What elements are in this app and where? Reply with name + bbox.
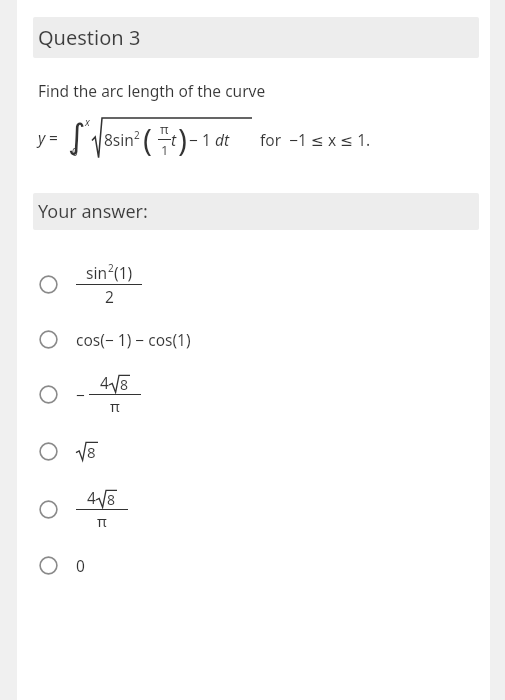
button[interactable]: Option cosine minus one minus cosine one	[0, 324, 505, 354]
staticText: 0	[72, 145, 78, 159]
staticText: 8	[107, 490, 116, 509]
staticText: 2	[134, 128, 140, 142]
staticText: =	[49, 127, 58, 148]
button[interactable]: Option sin squared 1 over 2	[0, 253, 505, 315]
staticText: − 1	[189, 129, 211, 150]
staticText: ∫	[68, 116, 86, 156]
staticText: x	[85, 115, 90, 129]
staticText: t	[171, 129, 177, 150]
staticText: 8	[120, 375, 129, 394]
staticText: ⎛	[140, 131, 148, 148]
staticText: for −1 ≤ x ≤ 1.	[260, 129, 371, 150]
button[interactable]: Option zero	[0, 550, 505, 580]
staticText: )	[178, 119, 187, 160]
staticText: 4	[87, 487, 96, 508]
staticText: Question 3	[38, 24, 141, 51]
staticText: 0	[76, 555, 85, 576]
staticText: 4	[100, 372, 109, 393]
staticText: −	[76, 384, 85, 405]
button[interactable]: Option root eight	[0, 434, 505, 468]
staticText: sin	[86, 262, 108, 283]
staticText: π	[97, 511, 107, 531]
staticText: 8sin	[104, 129, 134, 150]
staticText: y	[38, 127, 46, 148]
staticText: (1)	[114, 262, 133, 283]
staticText: 8	[87, 442, 96, 462]
button[interactable]: Option negative four root eight over pi	[0, 364, 505, 424]
button[interactable]: Option four root eight over pi	[0, 480, 505, 538]
staticText: dt	[215, 129, 230, 150]
staticText: Your answer:	[38, 199, 148, 224]
staticText: π	[110, 396, 120, 416]
staticText: 2	[108, 261, 114, 275]
staticText: cos(− 1) − cos(1)	[76, 329, 191, 350]
staticText: 1	[161, 141, 169, 159]
staticText: (	[143, 119, 152, 160]
staticText: Find the arc length of the curve	[38, 80, 266, 101]
staticText: 2	[105, 286, 114, 307]
staticText: π	[160, 120, 169, 138]
